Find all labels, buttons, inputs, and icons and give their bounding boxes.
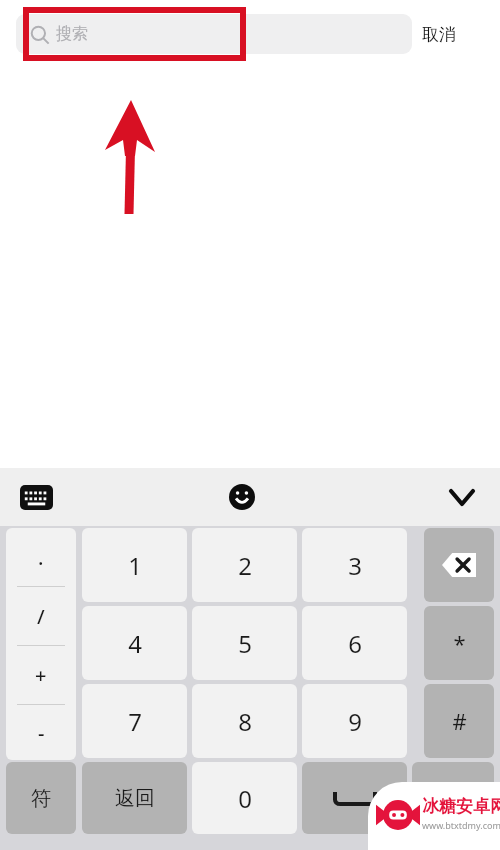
button[interactable]: + (6, 646, 76, 704)
button[interactable]: 8 (192, 684, 297, 758)
staticText: 回车 (434, 786, 472, 810)
button[interactable]: 符 (6, 762, 76, 834)
button[interactable]: 回车 (412, 762, 494, 834)
button[interactable]: Backspace (424, 528, 494, 602)
button[interactable]: 4 (82, 606, 187, 680)
staticText: 取消 (422, 24, 456, 45)
staticText: . (38, 544, 44, 571)
staticText: 2 (238, 549, 252, 582)
button[interactable]: 0 (192, 762, 297, 834)
button[interactable]: 2 (192, 528, 297, 602)
button[interactable]: 1 (82, 528, 187, 602)
button[interactable]: Space (302, 762, 407, 834)
staticText: 6 (348, 627, 362, 660)
staticText: 8 (238, 705, 252, 738)
button[interactable]: 5 (192, 606, 297, 680)
staticText: 9 (348, 705, 362, 738)
button[interactable]: 3 (302, 528, 407, 602)
button[interactable]: 6 (302, 606, 407, 680)
staticText: 5 (238, 627, 252, 660)
staticText: 搜索 (56, 24, 88, 44)
button[interactable]: 7 (82, 684, 187, 758)
button[interactable]: Switch keyboard (18, 484, 54, 511)
staticText: 7 (128, 705, 142, 738)
button[interactable]: - (6, 705, 76, 760)
staticText: 3 (348, 549, 362, 582)
button[interactable]: . (6, 528, 76, 586)
button[interactable]: 搜索 (16, 14, 412, 54)
button[interactable]: Hide keyboard (442, 477, 482, 517)
staticText: 冰糖安卓网 (422, 796, 500, 817)
staticText: + (35, 662, 47, 689)
staticText: 4 (128, 627, 142, 660)
button[interactable]: 返回 (82, 762, 187, 834)
button[interactable]: 取消 (422, 12, 456, 56)
button[interactable]: 9 (302, 684, 407, 758)
staticText: / (37, 603, 45, 630)
staticText: 返回 (115, 786, 155, 811)
staticText: - (38, 719, 45, 746)
staticText: 1 (128, 549, 142, 582)
staticText: 0 (238, 782, 252, 815)
button[interactable]: * (424, 606, 494, 680)
staticText: www.btxtdmy.com (422, 819, 500, 831)
button[interactable]: # (424, 684, 494, 758)
button[interactable]: Emoji (223, 478, 261, 516)
staticText: * (453, 628, 466, 658)
staticText: # (452, 706, 467, 736)
button[interactable]: / (6, 587, 76, 645)
staticText: 符 (31, 786, 51, 811)
